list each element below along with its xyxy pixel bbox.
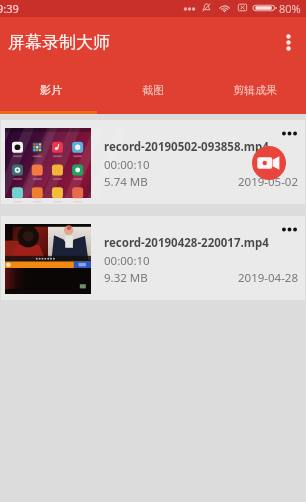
staticText: record-20190502-093858.mp4 — [104, 139, 269, 155]
button[interactable]: More options — [268, 24, 306, 62]
button[interactable]: Item options — [280, 120, 298, 144]
button[interactable]: record-20190428-220017.mp4 — [1, 216, 305, 300]
button[interactable]: 剪辑成果 — [204, 69, 306, 114]
staticText: 影片 — [40, 83, 62, 97]
staticText: 9:39 — [0, 1, 19, 16]
staticText: 剪辑成果 — [233, 83, 277, 97]
staticText: 80% — [279, 1, 301, 16]
staticText: record-20190428-220017.mp4 — [104, 235, 269, 251]
staticText: 截图 — [142, 83, 164, 97]
staticText: 2019-04-28 — [238, 270, 299, 286]
staticText: 9.32 MB — [104, 270, 148, 286]
button[interactable]: Item options — [280, 216, 298, 240]
button[interactable]: record-20190502-093858.mp4 — [1, 120, 305, 204]
staticText: 00:00:10 — [104, 253, 150, 269]
staticText: 屏幕录制大师 — [8, 32, 110, 53]
button[interactable]: 截图 — [102, 69, 204, 114]
button[interactable]: Start recording — [252, 146, 286, 180]
staticText: 5.74 MB — [104, 174, 148, 190]
staticText: 00:00:10 — [104, 157, 150, 173]
staticText: 2019-05-02 — [238, 174, 299, 190]
button[interactable]: 影片 — [0, 69, 102, 114]
